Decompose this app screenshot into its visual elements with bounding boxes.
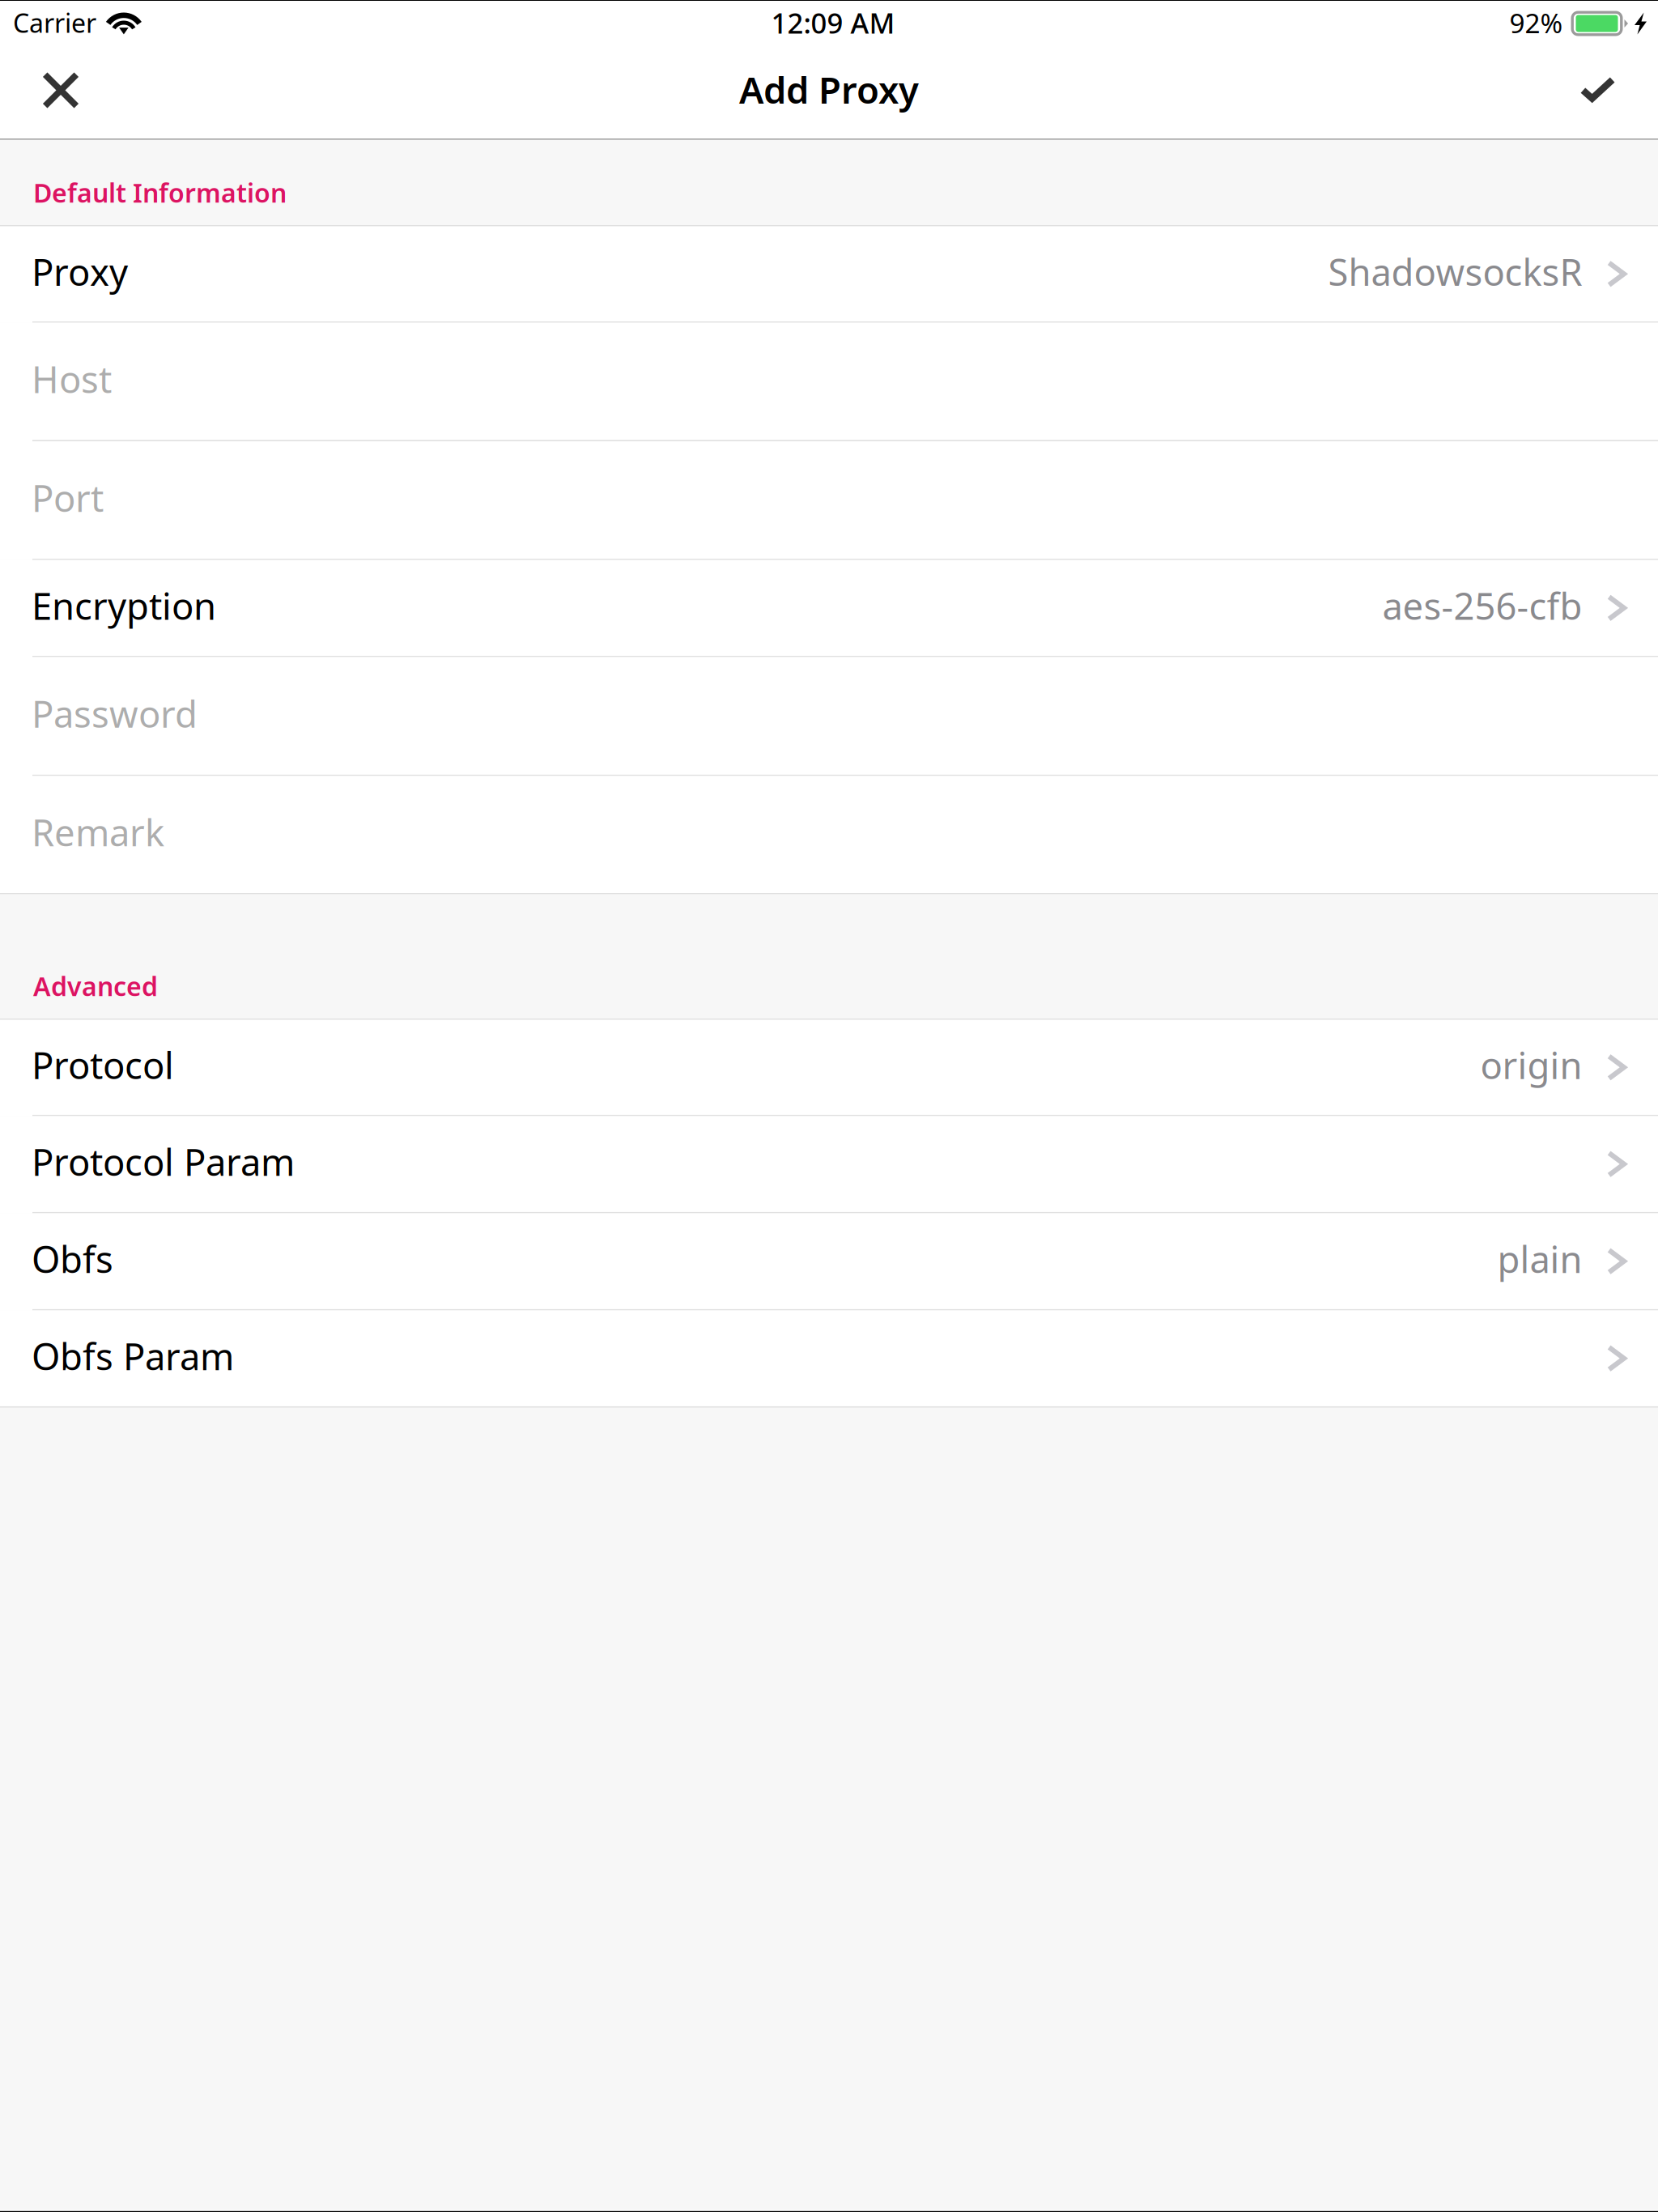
staticText: Obfs Param	[32, 1332, 234, 1380]
button[interactable]: Remark	[0, 776, 1658, 894]
staticText: aes-256-cfb	[1382, 581, 1582, 630]
button[interactable]: Save	[1550, 53, 1658, 137]
button[interactable]: Protocol Param	[0, 1116, 1658, 1213]
staticText: Encryption	[32, 581, 216, 630]
staticText: Proxy	[32, 247, 128, 296]
button[interactable]: Host	[0, 323, 1658, 441]
button[interactable]: Close	[0, 53, 109, 137]
button[interactable]: Proxy	[0, 226, 1658, 323]
staticText: Password	[32, 689, 198, 738]
staticText: Default Information	[33, 175, 287, 210]
button[interactable]: Obfs	[0, 1213, 1658, 1310]
staticText: 92%	[1509, 5, 1563, 41]
button[interactable]: Encryption	[0, 560, 1658, 657]
staticText: plain	[1497, 1234, 1582, 1283]
staticText: ShadowsocksR	[1328, 247, 1582, 296]
staticText: Protocol Param	[32, 1137, 295, 1186]
button[interactable]: Port	[0, 441, 1658, 560]
staticText: Port	[32, 473, 104, 522]
staticText: Carrier	[13, 6, 96, 40]
staticText: Add Proxy	[739, 65, 919, 114]
button[interactable]: Protocol	[0, 1020, 1658, 1116]
staticText: Protocol	[32, 1040, 174, 1089]
button[interactable]: Password	[0, 657, 1658, 776]
staticText: Obfs	[32, 1234, 113, 1283]
staticText: Advanced	[33, 969, 158, 1003]
button[interactable]: Obfs Param	[0, 1310, 1658, 1408]
staticText: Remark	[32, 808, 164, 856]
staticText: origin	[1480, 1040, 1582, 1089]
staticText: 12:09 AM	[771, 4, 895, 41]
staticText: Host	[32, 355, 112, 403]
